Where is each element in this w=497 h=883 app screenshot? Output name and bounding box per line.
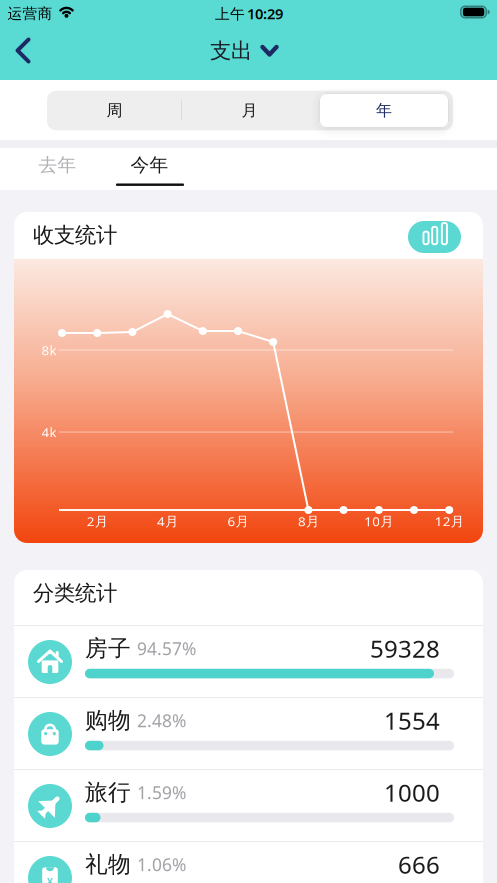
- button[interactable]: ¥: [14, 842, 483, 883]
- staticText: 12月: [435, 512, 464, 530]
- staticText: 4k: [41, 423, 56, 441]
- staticText: 上午 10:29: [215, 4, 283, 23]
- staticText: 6月: [227, 512, 248, 530]
- button[interactable]: 房子: [14, 626, 483, 698]
- staticText: 666: [398, 849, 440, 880]
- staticText: 运营商: [7, 4, 52, 22]
- staticText: 旅行: [85, 779, 131, 806]
- button[interactable]: 购物: [14, 698, 483, 770]
- staticText: 支出: [210, 38, 252, 64]
- staticText: 周: [106, 101, 122, 120]
- button[interactable]: 周: [49, 91, 179, 130]
- staticText: 4月: [157, 512, 178, 530]
- button[interactable]: 月: [184, 91, 314, 130]
- button[interactable]: 旅行: [14, 770, 483, 842]
- staticText: 10月: [364, 512, 393, 530]
- staticText: 1554: [384, 705, 440, 736]
- button[interactable]: 今年: [109, 144, 189, 186]
- staticText: 月: [241, 101, 257, 120]
- staticText: 年: [376, 101, 392, 120]
- staticText: 59328: [370, 633, 440, 664]
- staticText: 今年: [130, 153, 168, 176]
- staticText: 2月: [87, 512, 108, 530]
- staticText: 购物: [85, 707, 131, 734]
- staticText: 收支统计: [33, 222, 117, 248]
- staticText: 1.59%: [137, 781, 186, 804]
- button[interactable]: Chart type: [408, 221, 461, 253]
- staticText: 礼物: [85, 851, 131, 878]
- staticText: 房子: [85, 635, 131, 662]
- button[interactable]: 年: [319, 93, 449, 128]
- staticText: 8k: [41, 341, 56, 359]
- button[interactable]: 去年: [17, 144, 97, 186]
- staticText: 94.57%: [137, 637, 196, 660]
- staticText: 8月: [298, 512, 319, 530]
- staticText: 1000: [384, 777, 440, 808]
- staticText: 去年: [38, 153, 76, 176]
- staticText: ¥: [47, 874, 53, 883]
- button[interactable]: 支出: [210, 38, 278, 64]
- staticText: 2.48%: [137, 709, 186, 732]
- button[interactable]: Back: [8, 36, 36, 64]
- staticText: 分类统计: [33, 580, 117, 606]
- staticText: 1.06%: [137, 853, 186, 876]
